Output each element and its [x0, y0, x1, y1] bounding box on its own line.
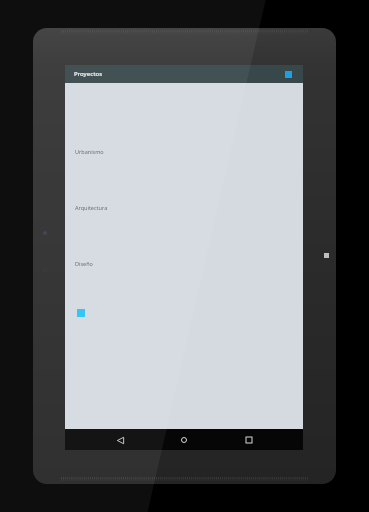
button[interactable]: Recent apps: [239, 430, 259, 450]
staticText: Arquitectura: [75, 204, 108, 211]
button[interactable]: Back: [110, 430, 130, 450]
staticText: Proyectos: [74, 70, 103, 78]
button[interactable]: Urbanismo: [65, 145, 303, 158]
button[interactable]: Nuevo proyecto: [282, 68, 294, 80]
button[interactable]: Arquitectura: [65, 201, 303, 214]
button[interactable]: Añadir: [74, 306, 88, 320]
staticText: Urbanismo: [75, 148, 104, 155]
staticText: Diseño: [75, 260, 93, 267]
button[interactable]: Home: [174, 430, 194, 450]
button[interactable]: Diseño: [65, 257, 303, 270]
